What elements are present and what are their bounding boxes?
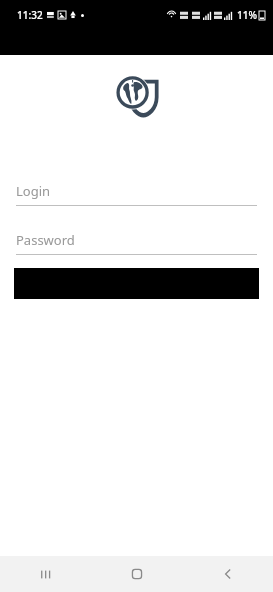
- other: App logo: [115, 74, 159, 118]
- staticText: 11:32: [17, 8, 43, 22]
- button[interactable]: Back: [182, 556, 273, 592]
- staticText: Login: [16, 182, 51, 200]
- button[interactable]: Recent apps: [0, 556, 91, 592]
- button[interactable]: Home: [91, 556, 182, 592]
- staticText: Password: [16, 231, 75, 249]
- staticText: 11%: [237, 8, 257, 22]
